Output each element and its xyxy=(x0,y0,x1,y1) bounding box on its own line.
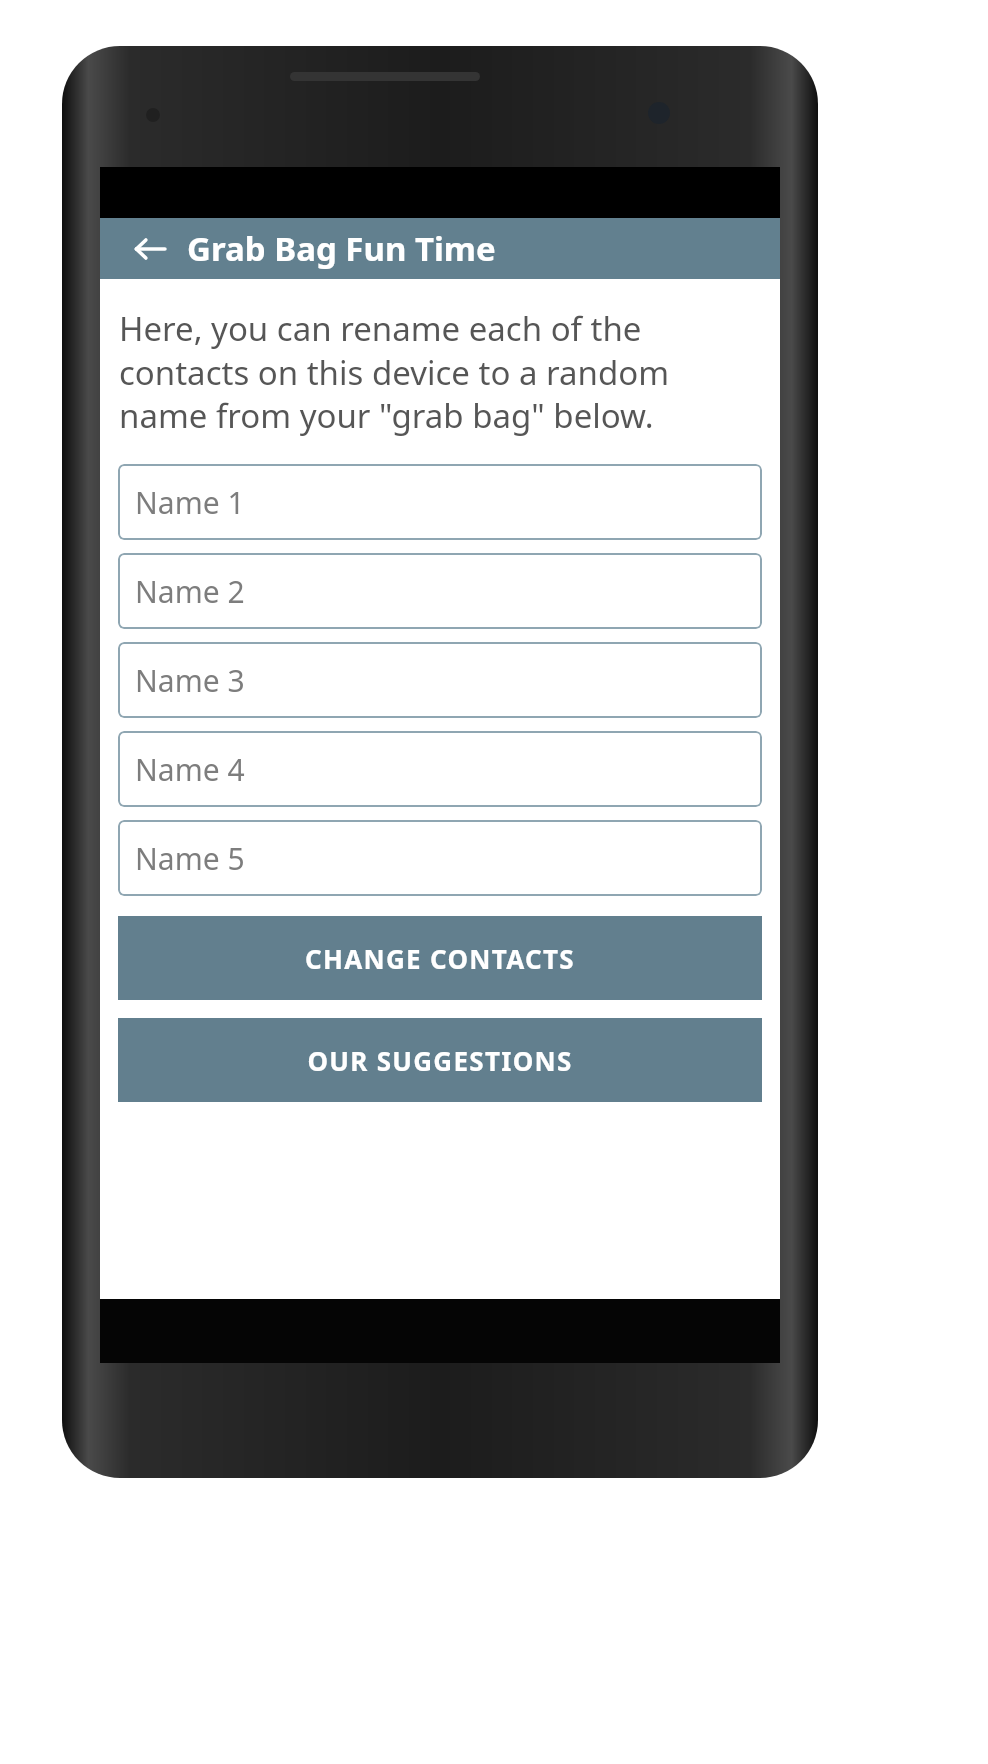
staticText: Name 3 xyxy=(135,660,245,701)
staticText: Name 2 xyxy=(135,571,245,612)
staticText: Name 5 xyxy=(135,838,245,879)
staticText: Name 1 xyxy=(135,482,245,523)
staticText: CHANGE CONTACTS xyxy=(305,941,575,976)
button[interactable]: Name 5 xyxy=(118,820,762,896)
button[interactable]: OUR SUGGESTIONS xyxy=(118,1018,762,1102)
button[interactable]: Name 1 xyxy=(118,464,762,540)
staticText: Name 4 xyxy=(135,749,245,790)
button[interactable]: Name 4 xyxy=(118,731,762,807)
staticText: OUR SUGGESTIONS xyxy=(307,1043,573,1078)
staticText: Here, you can rename each of the contact… xyxy=(119,306,768,437)
button[interactable]: Navigate up xyxy=(126,225,174,273)
button[interactable]: Name 3 xyxy=(118,642,762,718)
staticText: Grab Bag Fun Time xyxy=(187,226,496,271)
button[interactable]: CHANGE CONTACTS xyxy=(118,916,762,1000)
button[interactable]: Name 2 xyxy=(118,553,762,629)
